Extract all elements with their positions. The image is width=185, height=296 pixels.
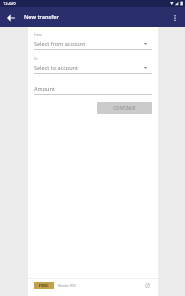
staticText: ?: [147, 283, 149, 288]
staticText: Select to account: [34, 64, 144, 71]
staticText: From: [34, 33, 42, 37]
button[interactable]: From: [34, 33, 152, 50]
staticText: New transfer: [24, 13, 59, 21]
staticText: To: [34, 57, 38, 61]
button[interactable]: Help: [143, 281, 152, 290]
button[interactable]: Back: [4, 11, 17, 24]
button[interactable]: To: [34, 57, 152, 74]
staticText: Amount: [34, 85, 152, 92]
button[interactable]: Amount: [34, 85, 152, 95]
button[interactable]: CONTINUE: [97, 102, 152, 114]
staticText: 12:44: [3, 1, 13, 6]
staticText: FDIC: [39, 283, 49, 289]
staticText: CONTINUE: [113, 105, 136, 111]
staticText: Select from account: [34, 40, 144, 47]
staticText: Member FDIC: [58, 284, 77, 288]
button[interactable]: More options: [168, 11, 181, 24]
